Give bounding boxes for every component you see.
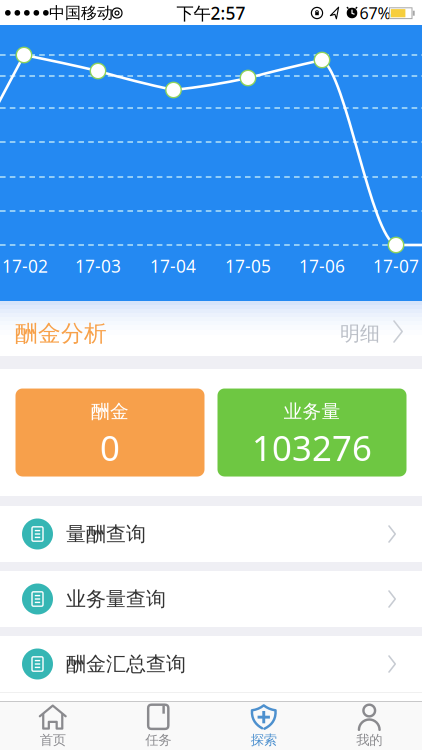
staticText: 67%	[359, 2, 390, 24]
staticText: 酬金	[91, 400, 129, 423]
staticText: 17-05	[225, 254, 271, 277]
button[interactable]: 业务量查询	[0, 571, 422, 627]
staticText: 酬金汇总查询	[66, 652, 186, 676]
staticText: 103276	[252, 424, 372, 470]
button[interactable]: 量酬查询	[0, 506, 422, 562]
staticText: 业务量	[283, 400, 340, 423]
staticText: 中国移动	[49, 3, 113, 23]
staticText: 17-06	[299, 254, 345, 277]
button[interactable]: 酬金汇总查询	[0, 636, 422, 692]
staticText: 量酬查询	[66, 522, 146, 546]
staticText: 明细	[340, 321, 380, 346]
button[interactable]: 酬金	[15, 388, 204, 476]
staticText: 17-07	[373, 254, 419, 277]
staticText: 业务量查询	[66, 587, 166, 611]
button[interactable]: 任务	[105, 702, 211, 750]
staticText: 0	[100, 424, 120, 470]
staticText: 下午2:57	[176, 1, 245, 24]
staticText: 任务	[145, 732, 171, 748]
button[interactable]: 明细	[340, 321, 404, 346]
button[interactable]: 探索	[211, 702, 316, 750]
staticText: 17-04	[150, 254, 196, 277]
staticText: 首页	[40, 732, 66, 748]
staticText: 探索	[251, 732, 277, 748]
staticText: 17-03	[75, 254, 121, 277]
button[interactable]: 首页	[0, 702, 105, 750]
button[interactable]: 我的	[316, 702, 422, 750]
staticText: 酬金分析	[15, 320, 107, 347]
staticText: 17-02	[2, 254, 48, 277]
button[interactable]: 业务量	[217, 388, 406, 476]
staticText: 我的	[356, 732, 382, 748]
